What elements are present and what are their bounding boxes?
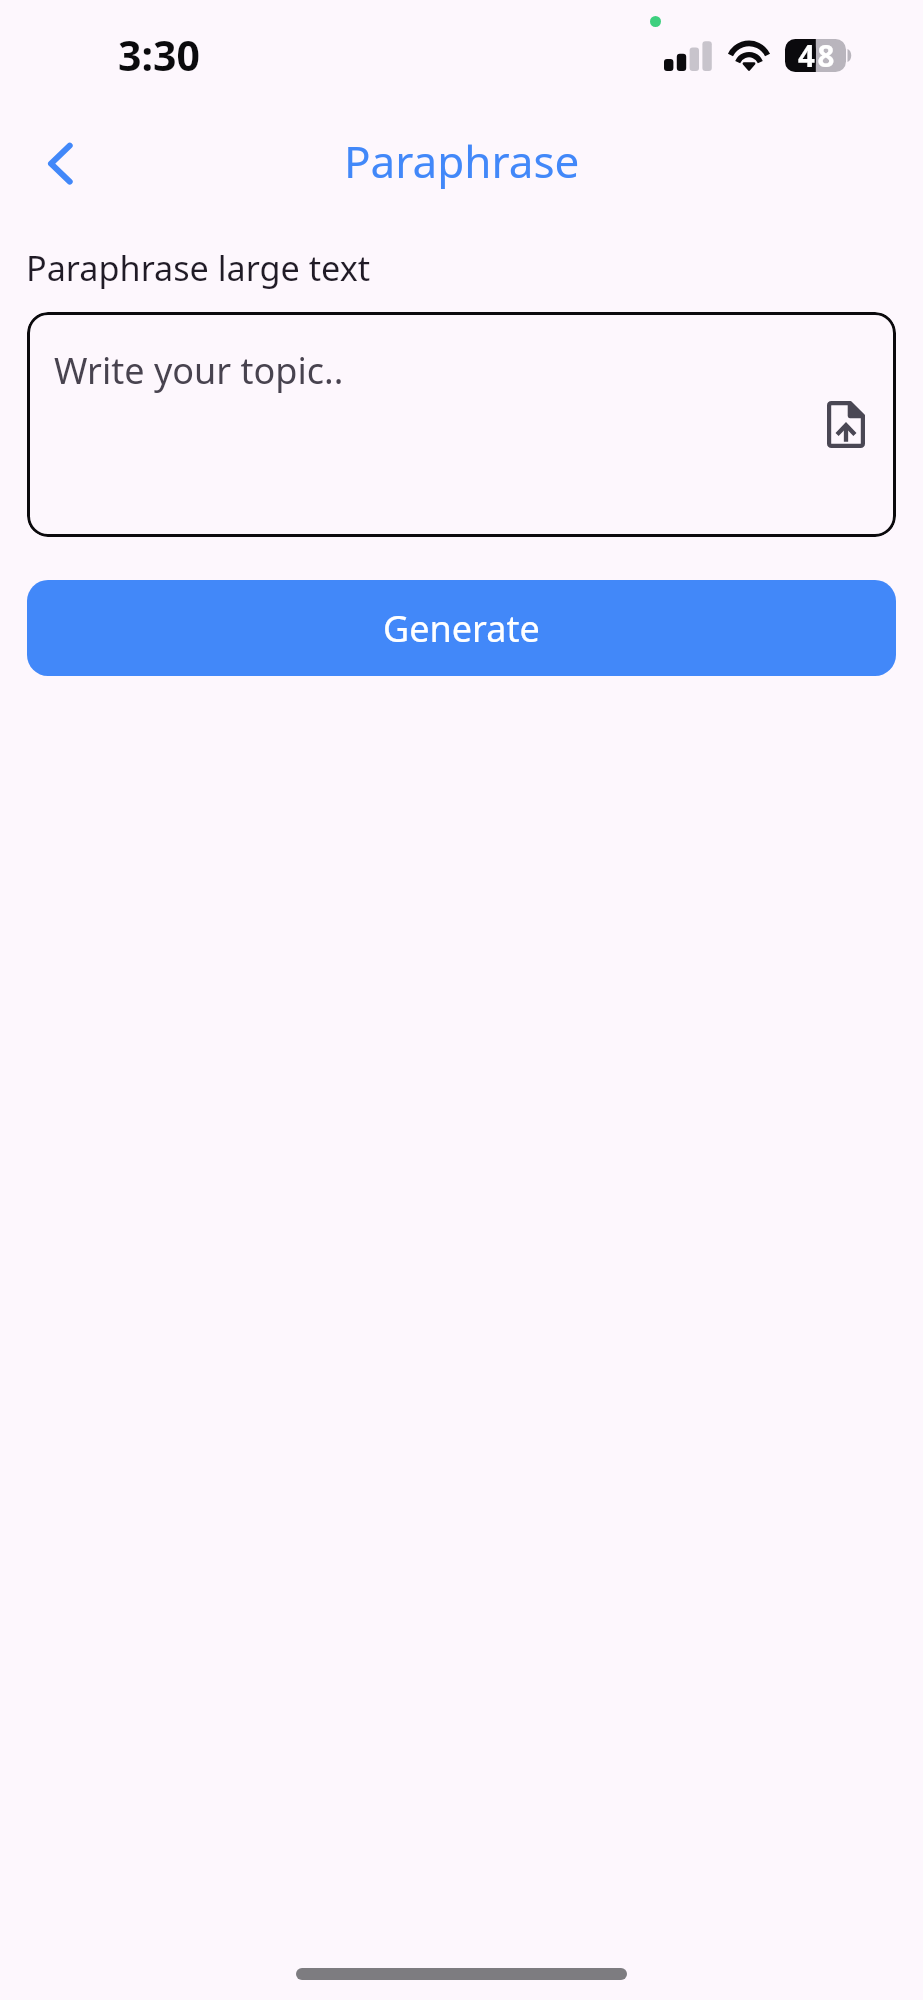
staticText: 3:30 bbox=[118, 27, 200, 83]
button[interactable]: Generate bbox=[27, 580, 896, 676]
staticText: Paraphrase large text bbox=[26, 244, 371, 291]
staticText: Paraphrase bbox=[344, 131, 580, 191]
button[interactable]: Write your topic.. bbox=[27, 312, 896, 537]
button[interactable]: Upload document bbox=[810, 384, 882, 465]
staticText: 48 bbox=[798, 35, 837, 75]
staticText: Write your topic.. bbox=[54, 346, 344, 395]
staticText: Generate bbox=[383, 604, 540, 653]
button[interactable]: Back bbox=[23, 131, 87, 195]
